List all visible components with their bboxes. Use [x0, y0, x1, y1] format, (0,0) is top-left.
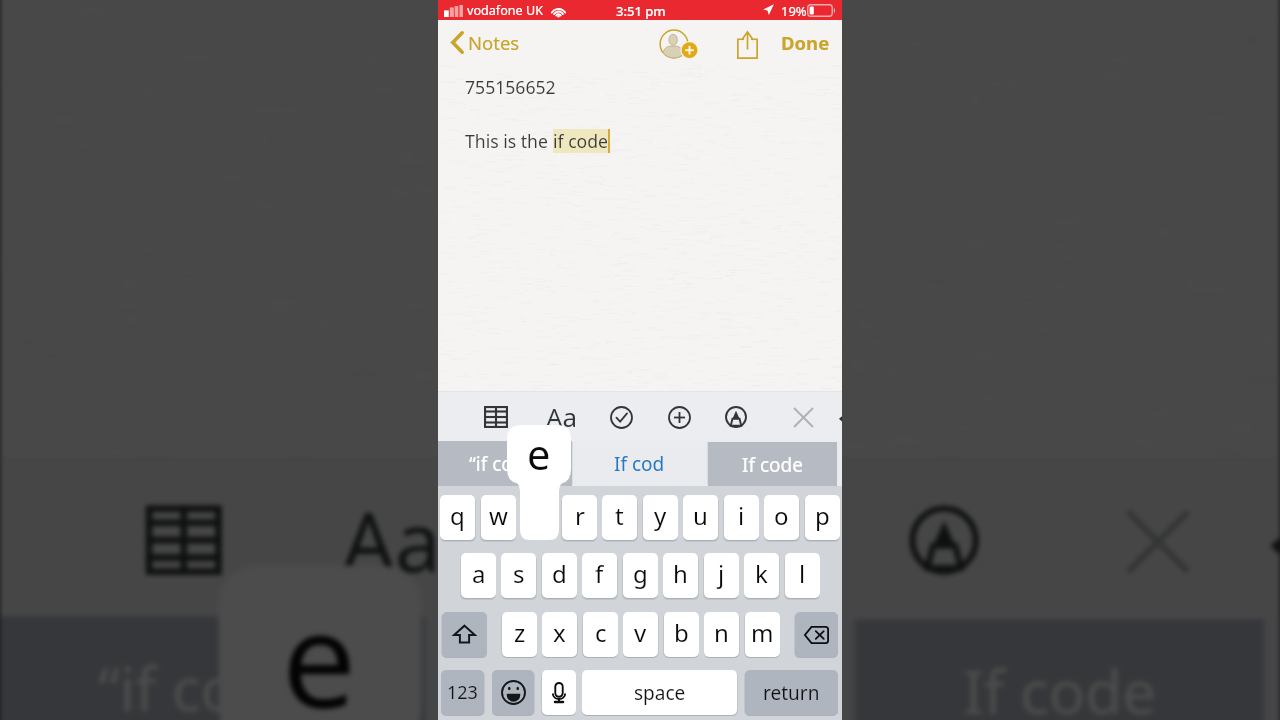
- button[interactable]: w: [481, 495, 516, 540]
- button[interactable]: h: [663, 553, 698, 598]
- button[interactable]: g: [623, 553, 658, 598]
- staticText: c: [595, 616, 607, 649]
- staticText: j: [718, 557, 725, 590]
- button[interactable]: m: [745, 612, 780, 657]
- staticText: vodafone UK: [467, 2, 543, 19]
- staticText: o: [774, 499, 789, 532]
- button[interactable]: Done: [777, 24, 834, 61]
- staticText: 755156652: [465, 75, 556, 99]
- staticText: f: [595, 557, 604, 590]
- button[interactable]: t: [602, 495, 637, 540]
- button[interactable]: 123: [441, 670, 484, 715]
- staticText: b: [674, 616, 689, 649]
- staticText: p: [815, 499, 830, 532]
- button[interactable]: z: [502, 612, 537, 657]
- button[interactable]: o: [764, 495, 799, 540]
- staticText: space: [634, 680, 686, 706]
- staticText: u: [693, 499, 708, 532]
- button[interactable]: s: [501, 553, 536, 598]
- button[interactable]: If code: [708, 442, 837, 487]
- staticText: “if code”: [469, 451, 542, 477]
- button[interactable]: Emoji: [492, 670, 534, 715]
- button[interactable]: Checklist: [526, 486, 634, 594]
- staticText: If code: [742, 452, 803, 478]
- staticText: e: [527, 426, 551, 482]
- button[interactable]: “if code”: [0, 616, 425, 720]
- button[interactable]: If cod: [425, 616, 852, 720]
- staticText: z: [514, 616, 526, 649]
- button[interactable]: Share: [729, 27, 765, 63]
- button[interactable]: j: [704, 553, 739, 598]
- button[interactable]: n: [704, 612, 739, 657]
- staticText: h: [673, 557, 688, 590]
- button[interactable]: More: [839, 412, 842, 425]
- button[interactable]: k: [744, 553, 779, 598]
- staticText: v: [634, 616, 647, 649]
- staticText: x: [553, 616, 566, 649]
- button[interactable]: “if code”: [438, 441, 572, 486]
- button[interactable]: Table: [479, 400, 513, 434]
- staticText: If code: [963, 651, 1156, 720]
- button[interactable]: Add attachment: [662, 400, 696, 434]
- staticText: 19%: [781, 2, 807, 20]
- button[interactable]: Add people: [655, 25, 693, 63]
- button[interactable]: Backspace: [795, 612, 838, 657]
- button[interactable]: d: [542, 553, 577, 598]
- staticText: a: [472, 557, 486, 590]
- staticText: l: [799, 557, 806, 590]
- button[interactable]: f: [582, 553, 617, 598]
- staticText: i: [738, 499, 745, 532]
- staticText: return: [763, 680, 820, 706]
- staticText: Aa: [546, 399, 578, 433]
- button[interactable]: q: [440, 495, 475, 540]
- button[interactable]: If code: [855, 619, 1264, 720]
- staticText: s: [513, 557, 525, 590]
- staticText: n: [714, 616, 729, 649]
- button[interactable]: Notes: [447, 24, 520, 61]
- button[interactable]: y: [643, 495, 678, 540]
- button[interactable]: i: [724, 495, 759, 540]
- staticText: w: [489, 499, 508, 532]
- staticText: “if code”: [98, 648, 329, 720]
- staticText: 123: [447, 680, 478, 705]
- button[interactable]: Markup: [890, 486, 998, 594]
- staticText: 3:51 pm: [616, 2, 666, 20]
- staticText: r: [575, 499, 585, 532]
- button[interactable]: v: [623, 612, 658, 657]
- staticText: m: [751, 616, 774, 649]
- button[interactable]: More: [1270, 524, 1280, 565]
- staticText: If cod: [614, 451, 665, 477]
- button[interactable]: l: [785, 553, 820, 598]
- staticText: d: [552, 557, 567, 590]
- staticText: This is the: [465, 129, 553, 153]
- button[interactable]: Shift: [442, 612, 487, 657]
- button[interactable]: x: [542, 612, 577, 657]
- button[interactable]: Dictation: [542, 670, 576, 715]
- button[interactable]: Format: [320, 483, 466, 591]
- staticText: g: [633, 557, 648, 590]
- staticText: q: [450, 499, 465, 532]
- button[interactable]: b: [664, 612, 699, 657]
- staticText: If cod: [558, 648, 719, 720]
- button[interactable]: Close keyboard: [1103, 486, 1210, 594]
- staticText: t: [615, 499, 624, 532]
- button[interactable]: Markup: [719, 400, 753, 434]
- button[interactable]: Close keyboard: [786, 400, 820, 434]
- button[interactable]: Table: [130, 486, 238, 594]
- staticText: Aa: [342, 483, 444, 591]
- button[interactable]: c: [583, 612, 618, 657]
- button[interactable]: a: [461, 553, 496, 598]
- button[interactable]: u: [683, 495, 718, 540]
- button[interactable]: r: [562, 495, 597, 540]
- button[interactable]: Format: [539, 399, 585, 433]
- button[interactable]: Checklist: [604, 400, 638, 434]
- button[interactable]: p: [805, 495, 840, 540]
- button[interactable]: Add attachment: [710, 486, 817, 594]
- button[interactable]: If cod: [572, 441, 707, 486]
- staticText: k: [755, 557, 768, 590]
- staticText: y: [654, 499, 667, 532]
- button[interactable]: return: [745, 670, 838, 715]
- button[interactable]: space: [582, 670, 737, 715]
- staticText: Done: [781, 30, 830, 55]
- staticText: Notes: [468, 30, 520, 55]
